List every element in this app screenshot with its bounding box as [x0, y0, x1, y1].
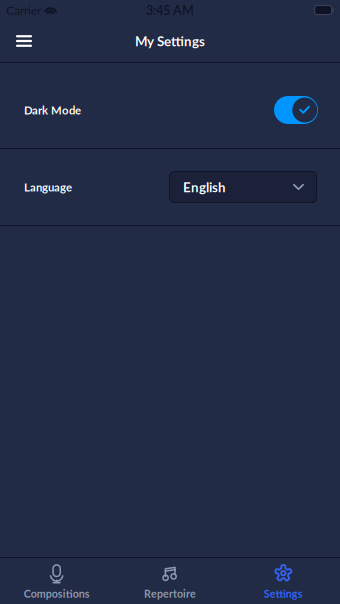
button[interactable]: English [169, 171, 317, 203]
staticText: Settings [264, 587, 303, 600]
button[interactable]: Menu [0, 20, 48, 62]
button[interactable]: Compositions [0, 555, 113, 604]
staticText: Repertoire [144, 587, 196, 600]
button[interactable]: Dark Mode [274, 96, 318, 124]
staticText: Language [24, 180, 72, 194]
button[interactable]: Repertoire [113, 555, 227, 604]
staticText: Carrier [6, 3, 41, 17]
button[interactable]: Settings [227, 555, 340, 604]
staticText: 3:45 AM [146, 2, 194, 18]
staticText: My Settings [135, 33, 205, 49]
staticText: Dark Mode [24, 103, 81, 117]
staticText: English [183, 179, 226, 195]
staticText: Compositions [24, 587, 90, 600]
